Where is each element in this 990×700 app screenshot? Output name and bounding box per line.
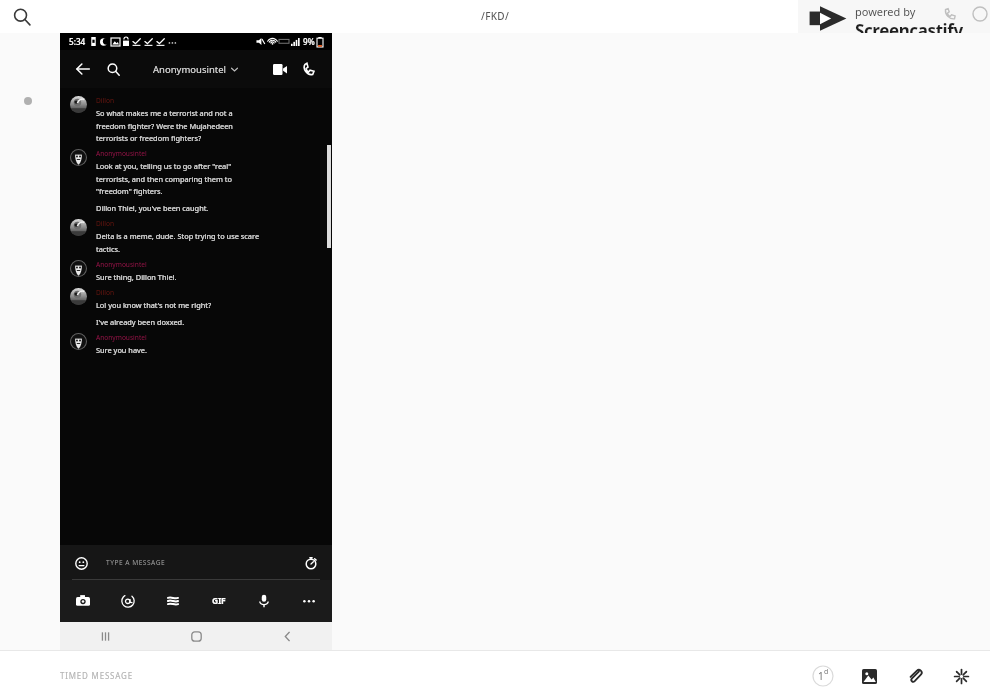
- button[interactable]: Camera: [67, 585, 99, 617]
- button[interactable]: Search conversation: [100, 56, 126, 82]
- staticText: Dillon Thiel, you've been caught.: [96, 203, 209, 213]
- staticText: Dillon: [96, 219, 114, 228]
- button[interactable]: Voice message: [248, 585, 280, 617]
- staticText: TIMED MESSAGE: [60, 670, 133, 681]
- staticText: Sure thing, Dillon Thiel.: [96, 272, 177, 282]
- staticText: So what makes me a terrorist and not a f…: [96, 108, 233, 143]
- staticText: Anonymousintel: [96, 260, 147, 269]
- button[interactable]: Search: [8, 3, 36, 31]
- staticText: 9%: [303, 36, 315, 47]
- button[interactable]: Emoji: [70, 552, 92, 574]
- button[interactable]: More options: [293, 585, 325, 617]
- button[interactable]: Dillon: [60, 88, 332, 145]
- staticText: Screencastify: [855, 19, 963, 33]
- button[interactable]: Anonymousintel: [60, 145, 332, 215]
- staticText: d: [824, 667, 829, 677]
- staticText: Dillon: [96, 96, 114, 105]
- button[interactable]: GIF: [203, 585, 235, 617]
- staticText: Dillon: [96, 288, 114, 297]
- button[interactable]: Back: [70, 56, 96, 82]
- button[interactable]: Home: [181, 622, 211, 650]
- button[interactable]: Stickers: [157, 585, 189, 617]
- button[interactable]: Dillon: [60, 284, 332, 329]
- button[interactable]: Anonymousintel: [149, 59, 242, 80]
- button[interactable]: Dillon: [60, 215, 332, 256]
- button[interactable]: Effects: [946, 661, 976, 691]
- button[interactable]: Recent apps: [90, 622, 120, 650]
- staticText: Anonymousintel: [96, 149, 147, 158]
- staticText: Look at you, telling us to go after "rea…: [96, 161, 232, 196]
- button[interactable]: Video call: [266, 55, 294, 83]
- button[interactable]: Attach file: [900, 661, 930, 691]
- button[interactable]: Add image: [854, 661, 884, 691]
- staticText: /FKD/: [481, 9, 510, 23]
- staticText: TYPE A MESSAGE: [106, 558, 166, 567]
- button[interactable]: Message timer one day: [808, 661, 838, 691]
- button[interactable]: Anonymousintel: [60, 256, 332, 284]
- staticText: 5:34: [69, 36, 86, 47]
- staticText: Anonymousintel: [153, 63, 227, 76]
- button[interactable]: Mention: [112, 585, 144, 617]
- button[interactable]: Anonymousintel: [60, 329, 332, 357]
- staticText: powered by: [855, 4, 916, 19]
- button[interactable]: Voice call: [294, 55, 322, 83]
- staticText: 1: [818, 669, 824, 683]
- staticText: I've already been doxxed.: [96, 317, 185, 327]
- staticText: GIF: [212, 595, 226, 607]
- staticText: Delta is a meme, dude. Stop trying to us…: [96, 231, 260, 254]
- staticText: Anonymousintel: [96, 333, 147, 342]
- button[interactable]: Timed message: [300, 552, 322, 574]
- staticText: Lol you know that's not me right?: [96, 300, 212, 310]
- button[interactable]: Back: [272, 622, 302, 650]
- staticText: Sure you have.: [96, 345, 147, 355]
